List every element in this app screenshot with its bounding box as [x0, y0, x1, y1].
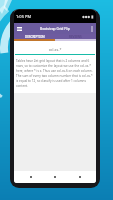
staticText: Bootstrap Grid Flip [40, 26, 70, 31]
button[interactable]: Menu [14, 23, 25, 34]
button[interactable]: More options [88, 23, 96, 34]
staticText: 1:05 PM [16, 14, 32, 19]
button[interactable]: REVIEWS [55, 34, 96, 39]
button[interactable]: Home [47, 171, 63, 183]
staticText: col-xs-* [14, 47, 96, 52]
staticText: Tables have 2et grid layout that is 2 co… [16, 59, 94, 88]
button[interactable]: DESCRIPTION [14, 34, 55, 39]
button[interactable]: Back [23, 171, 39, 183]
button[interactable]: Recents [72, 171, 88, 183]
staticText: REVIEWS [69, 35, 82, 39]
staticText: DESCRIPTION [25, 35, 45, 39]
